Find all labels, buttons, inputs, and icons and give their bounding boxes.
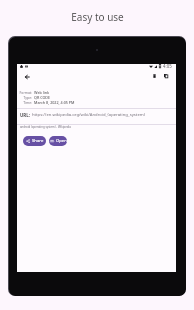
- staticText: Time:: [23, 100, 32, 105]
- staticText: Format:: [19, 90, 32, 95]
- button[interactable]: Open: [49, 136, 67, 146]
- staticText: Type:: [23, 95, 32, 100]
- staticText: Web link: [34, 90, 50, 95]
- staticText: URL:: [20, 112, 30, 118]
- staticText: https://en.wikipedia.org/wiki/Android_(o…: [32, 112, 145, 118]
- staticText: QR CODE: [34, 95, 51, 100]
- button[interactable]: Copy: [160, 70, 171, 81]
- staticText: March 8, 2022, 4:05 PM: [34, 100, 75, 105]
- staticText: android (operating system) - Wikipedia: [20, 125, 71, 129]
- staticText: Open: [56, 138, 67, 144]
- staticText: Easy to use: [71, 10, 124, 24]
- button[interactable]: Share: [23, 136, 46, 146]
- button[interactable]: Back: [21, 71, 33, 83]
- staticText: 4:05: [163, 63, 172, 69]
- button[interactable]: Delete: [149, 70, 160, 81]
- staticText: Share: [32, 138, 44, 144]
